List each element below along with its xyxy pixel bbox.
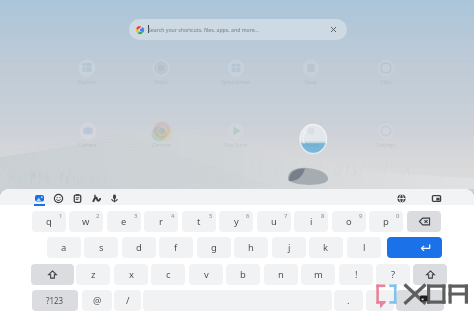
button[interactable]: g	[197, 237, 231, 258]
button[interactable]: Switch language	[393, 190, 409, 206]
staticText: g	[211, 241, 217, 254]
staticText: c	[166, 268, 171, 281]
button[interactable]: Floating keyboard	[428, 190, 444, 206]
staticText: ?	[391, 268, 396, 281]
button[interactable]: p	[369, 211, 403, 232]
button[interactable]: k	[309, 237, 343, 258]
staticText: Play Store	[224, 142, 248, 149]
button[interactable]: w	[69, 211, 103, 232]
button[interactable]: e	[107, 211, 141, 232]
staticText: b	[240, 268, 246, 281]
staticText: z	[91, 268, 96, 281]
button[interactable]: s	[84, 237, 118, 258]
button[interactable]: a	[47, 237, 81, 258]
button[interactable]: m	[301, 264, 335, 285]
staticText: 1	[59, 212, 63, 220]
button[interactable]: Photos	[287, 122, 335, 154]
staticText: 9	[359, 212, 363, 220]
button[interactable]: Voice input	[106, 190, 122, 206]
button[interactable]: Enter	[387, 237, 442, 258]
staticText: o	[346, 215, 352, 228]
button[interactable]: ?123	[32, 290, 78, 311]
staticText: Search your shortcuts, files, apps, and …	[148, 26, 259, 33]
button[interactable]: c	[151, 264, 185, 285]
staticText: 7	[284, 212, 288, 220]
button[interactable]: Spreadsheet	[212, 59, 260, 91]
button[interactable]: Backspace	[407, 211, 441, 232]
staticText: Slides	[154, 79, 168, 86]
button[interactable]: Play Store	[212, 122, 260, 154]
staticText: h	[248, 241, 254, 254]
button[interactable]: t	[182, 211, 216, 232]
staticText: s	[99, 241, 104, 254]
button[interactable]: n	[264, 264, 298, 285]
staticText: i	[310, 215, 313, 228]
staticText: u	[271, 215, 277, 228]
button[interactable]: Shift	[413, 264, 447, 285]
button[interactable]: r	[144, 211, 178, 232]
staticText: 6	[246, 212, 250, 220]
staticText: Photos	[303, 142, 320, 149]
button[interactable]: Chrome	[137, 122, 185, 154]
button[interactable]: z	[76, 264, 110, 285]
button[interactable]: o	[332, 211, 366, 232]
staticText: e	[121, 215, 127, 228]
button[interactable]: .	[334, 290, 363, 311]
staticText: Settings	[376, 142, 396, 149]
staticText: v	[204, 268, 209, 281]
button[interactable]: Emoji	[50, 190, 66, 206]
button[interactable]: b	[226, 264, 260, 285]
button[interactable]: u	[257, 211, 291, 232]
button[interactable]: !	[339, 264, 373, 285]
button[interactable]: Slides	[137, 59, 185, 91]
button[interactable]: Explore	[63, 59, 111, 91]
staticText: l	[363, 241, 366, 254]
button[interactable]: Handwriting	[88, 190, 104, 206]
button[interactable]: x	[114, 264, 148, 285]
button[interactable]: j	[272, 237, 306, 258]
staticText: .	[347, 294, 350, 307]
staticText: @	[93, 294, 102, 307]
button[interactable]: i	[294, 211, 328, 232]
staticText: q	[46, 215, 52, 228]
staticText: m	[314, 268, 323, 281]
button[interactable]: Settings	[362, 122, 410, 154]
button[interactable]: v	[189, 264, 223, 285]
staticText: 4	[171, 212, 175, 220]
staticText: Camera	[78, 142, 97, 149]
staticText: Files	[381, 79, 392, 86]
staticText: 5	[209, 212, 213, 220]
button[interactable]: Emoji	[366, 290, 394, 311]
button[interactable]: f	[159, 237, 193, 258]
staticText: j	[288, 241, 291, 254]
staticText: y	[234, 215, 239, 228]
staticText: Spreadsheet	[221, 79, 251, 86]
button[interactable]: h	[234, 237, 268, 258]
button[interactable]: q	[32, 211, 66, 232]
staticText: 8	[321, 212, 325, 220]
button[interactable]: Stickers	[31, 190, 47, 206]
staticText: 2	[96, 212, 100, 220]
button[interactable]: d	[122, 237, 156, 258]
button[interactable]: Clipboard	[69, 190, 85, 206]
button[interactable]: Search your shortcuts, files, apps, and …	[129, 19, 347, 40]
staticText: /	[126, 294, 130, 307]
button[interactable]: Clear	[327, 23, 340, 36]
staticText: 3	[134, 212, 138, 220]
button[interactable]: Camera	[63, 122, 111, 154]
button[interactable]: l	[347, 237, 381, 258]
button[interactable]: Shift	[31, 264, 74, 285]
button[interactable]: y	[219, 211, 253, 232]
staticText: d	[136, 241, 142, 254]
staticText: p	[383, 215, 389, 228]
button[interactable]: Hide keyboard	[396, 290, 444, 311]
staticText: a	[61, 241, 67, 254]
staticText: ?123	[46, 295, 64, 306]
button[interactable]: @	[82, 290, 112, 311]
button[interactable]: ?	[376, 264, 410, 285]
staticText: w	[82, 215, 90, 228]
button[interactable]: /	[114, 290, 141, 311]
